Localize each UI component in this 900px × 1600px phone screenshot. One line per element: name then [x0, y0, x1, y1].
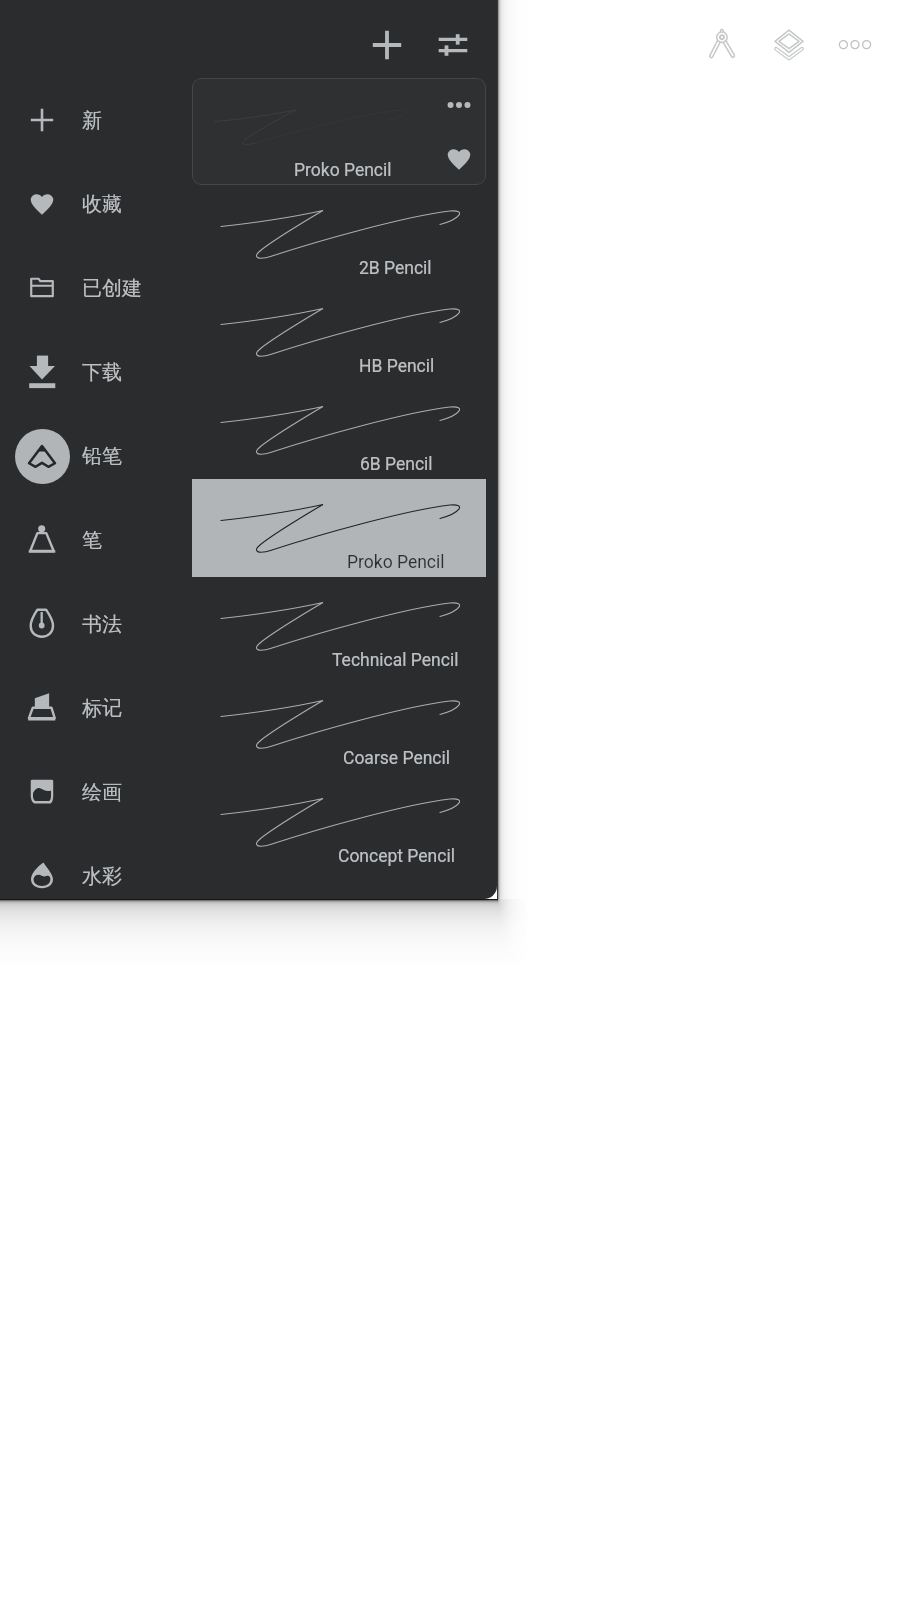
- staticText: 铅笔: [82, 444, 122, 469]
- button[interactable]: 书法: [2, 591, 180, 657]
- staticText: 已创建: [82, 276, 142, 301]
- button[interactable]: Coarse Pencil: [192, 675, 486, 773]
- button[interactable]: 2B Pencil: [192, 185, 486, 283]
- button[interactable]: Favourite: [436, 136, 482, 182]
- button[interactable]: Drawing guide: [705, 26, 741, 62]
- button[interactable]: 下载: [2, 339, 180, 405]
- button[interactable]: Concept Pencil: [192, 773, 486, 871]
- staticText: 书法: [82, 612, 122, 637]
- button[interactable]: Brush options: [436, 82, 482, 128]
- button[interactable]: 新: [2, 87, 180, 153]
- button[interactable]: 收藏: [2, 171, 180, 237]
- staticText: HB Pencil: [359, 356, 435, 377]
- button[interactable]: 水彩: [2, 843, 180, 899]
- button[interactable]: 标记: [2, 675, 180, 741]
- staticText: Coarse Pencil: [343, 748, 451, 769]
- button[interactable]: Layers: [771, 26, 807, 62]
- staticText: 水彩: [82, 864, 122, 889]
- button[interactable]: 铅笔: [2, 423, 180, 489]
- button[interactable]: Proko Pencil: [192, 479, 486, 577]
- button[interactable]: 绘画: [2, 759, 180, 825]
- button[interactable]: 6B Pencil: [192, 381, 486, 479]
- button[interactable]: 已创建: [2, 255, 180, 321]
- staticText: 收藏: [82, 192, 122, 217]
- staticText: 6B Pencil: [360, 454, 433, 475]
- staticText: 2B Pencil: [359, 258, 432, 279]
- staticText: 标记: [82, 696, 122, 721]
- staticText: Proko Pencil: [347, 552, 445, 573]
- button[interactable]: New brush: [369, 27, 405, 63]
- staticText: Proko Pencil: [294, 160, 392, 181]
- staticText: 绘画: [82, 780, 122, 805]
- button[interactable]: Brush settings: [435, 27, 471, 63]
- staticText: Technical Pencil: [332, 650, 459, 671]
- button[interactable]: Brush options: [192, 78, 486, 185]
- button[interactable]: More options: [837, 26, 873, 62]
- button[interactable]: 笔: [2, 507, 180, 573]
- button[interactable]: Technical Pencil: [192, 577, 486, 675]
- staticText: 新: [82, 108, 102, 133]
- staticText: 下载: [82, 360, 122, 385]
- button[interactable]: HB Pencil: [192, 283, 486, 381]
- staticText: 笔: [82, 528, 102, 553]
- staticText: Concept Pencil: [338, 846, 455, 867]
